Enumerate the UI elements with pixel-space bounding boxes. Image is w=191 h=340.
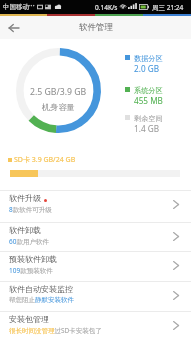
- button[interactable]: Back: [0, 16, 28, 39]
- staticText: 数据分区: [134, 54, 163, 63]
- staticText: 软件升级: [9, 193, 41, 203]
- staticText: 很长时间没管理过SD卡安装包了: [9, 326, 102, 335]
- staticText: •••: [28, 2, 35, 10]
- staticText: SD卡 3.9 GB/24 GB: [14, 155, 76, 165]
- button[interactable]: 软件升级: [0, 190, 191, 222]
- staticText: 60款用户软件: [9, 237, 49, 246]
- staticText: 系统分区: [134, 86, 163, 95]
- staticText: 455 MB: [134, 95, 163, 106]
- staticText: 剩余空间: [134, 114, 163, 123]
- button[interactable]: 安装包管理: [0, 311, 191, 340]
- staticText: 机身容量: [42, 102, 75, 112]
- staticText: 帮您阻止静默安装软件: [9, 296, 74, 304]
- staticText: 周三 21:24: [152, 3, 184, 12]
- staticText: 8款软件可升级: [9, 205, 52, 214]
- staticText: 2.5 GB/3.9 GB: [30, 86, 87, 98]
- staticText: 预装软件卸载: [9, 254, 57, 264]
- button[interactable]: 预装软件卸载: [0, 251, 191, 281]
- staticText: 0.14K/s: [95, 3, 118, 12]
- staticText: 软件自动安装监控: [9, 284, 73, 294]
- staticText: 中国移动: [3, 3, 29, 11]
- button[interactable]: 软件自动安装监控: [0, 281, 191, 311]
- staticText: 2.0 GB: [134, 63, 159, 74]
- button[interactable]: 软件卸载: [0, 222, 191, 251]
- staticText: 软件卸载: [9, 225, 41, 235]
- staticText: 1.4 GB: [134, 123, 159, 134]
- staticText: 109款预装软件: [9, 266, 53, 275]
- staticText: 软件管理: [79, 22, 113, 33]
- staticText: 安装包管理: [9, 314, 49, 324]
